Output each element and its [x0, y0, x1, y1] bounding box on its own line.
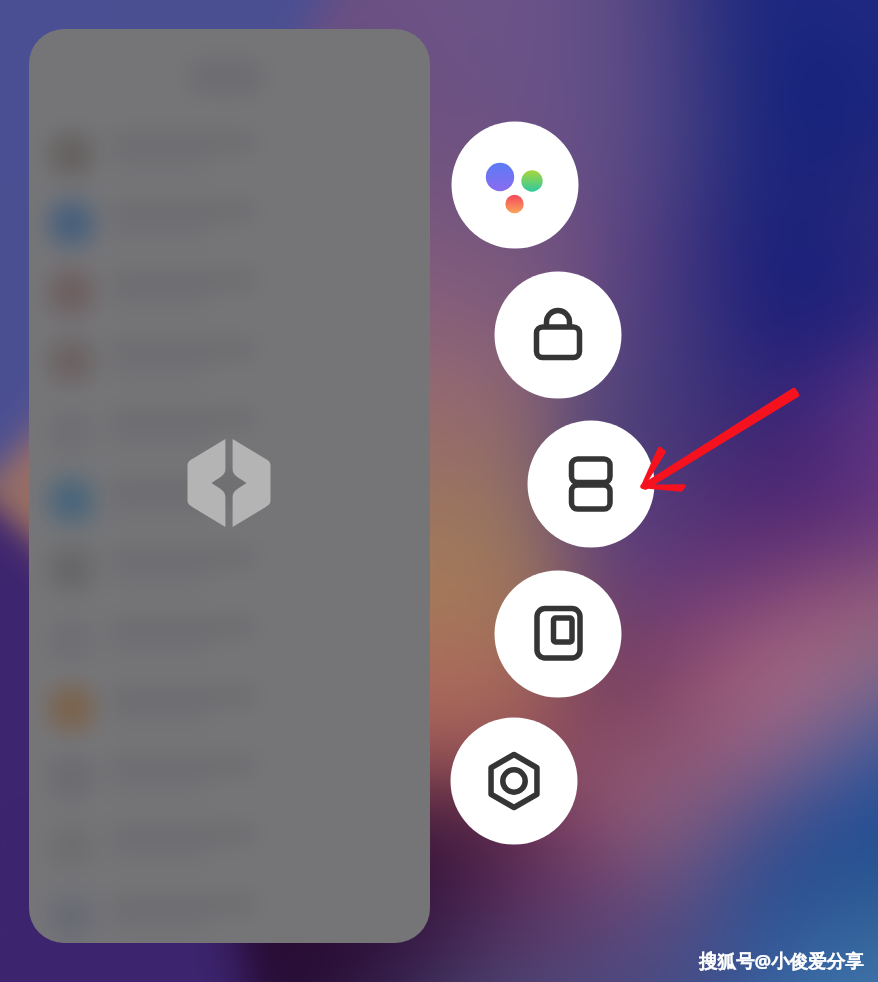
button[interactable]: App info [451, 718, 578, 845]
button[interactable]: Picture in picture [495, 571, 622, 698]
button[interactable]: Recent app [29, 29, 430, 943]
staticText: 搜狐号@小俊爱分享 [699, 948, 864, 973]
button[interactable]: Split screen [528, 421, 655, 548]
button[interactable]: Google Assistant [452, 122, 579, 249]
button[interactable]: Lock app [495, 272, 622, 399]
